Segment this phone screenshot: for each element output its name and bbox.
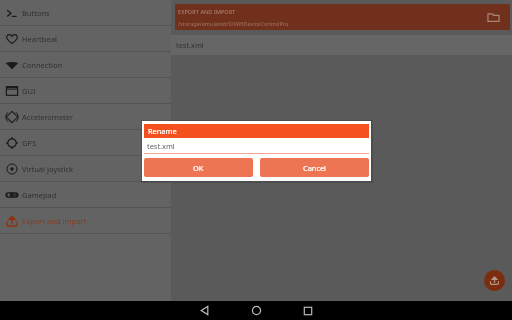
button[interactable]: EXPORT AND IMPORT (175, 4, 510, 30)
button[interactable]: Virtual Joystick (0, 156, 171, 182)
button[interactable]: Cancel (260, 158, 369, 177)
staticText: Cancel (303, 163, 327, 173)
button[interactable]: Buttons (0, 0, 171, 26)
button[interactable]: Export (484, 270, 505, 291)
staticText: Rename (148, 126, 177, 136)
button[interactable]: Open folder (486, 10, 501, 25)
staticText: Buttons (22, 8, 50, 18)
staticText: Virtual Joystick (22, 164, 74, 174)
staticText: test.xml (176, 40, 204, 50)
button[interactable]: OK (144, 158, 253, 177)
button[interactable]: Home (230, 301, 282, 320)
staticText: test.xml (147, 141, 175, 151)
button[interactable]: Heartbeat (0, 26, 171, 52)
button[interactable]: Gamepad (0, 182, 171, 208)
staticText: EXPORT AND IMPORT (178, 8, 236, 15)
staticText: Gamepad (22, 190, 57, 200)
staticText: OK (193, 163, 204, 173)
staticText: Connection (22, 60, 63, 70)
staticText: Export and import (22, 216, 87, 226)
button[interactable]: Connection (0, 52, 171, 78)
staticText: /storage/emulated/0/WifiDeviceControlPro (178, 20, 289, 27)
button[interactable]: Back (178, 301, 230, 320)
staticText: Heartbeat (22, 34, 58, 44)
button[interactable]: GPS (0, 130, 171, 156)
staticText: GUI (22, 86, 36, 96)
button[interactable]: Recents (282, 301, 334, 320)
staticText: GPS (22, 138, 37, 148)
button[interactable]: GUI (0, 78, 171, 104)
button[interactable]: Accelerometer (0, 104, 171, 130)
staticText: Accelerometer (22, 112, 74, 122)
button[interactable]: Export and import (0, 208, 171, 234)
